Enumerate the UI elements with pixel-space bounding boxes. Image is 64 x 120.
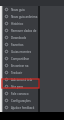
button[interactable]: Traduzir — [3, 69, 38, 76]
button[interactable]: Encontrar na página — [3, 62, 38, 69]
staticText: Histórico — [11, 22, 24, 26]
button[interactable]: Nova guia anônima — [3, 13, 38, 20]
staticText: Encontrar na página — [11, 64, 38, 68]
button[interactable]: Nova guia — [3, 6, 38, 13]
button[interactable]: Ajuda e feedback — [3, 104, 38, 111]
button[interactable]: Site para computador — [3, 83, 38, 90]
staticText: Ajuda e feedback — [11, 106, 35, 110]
staticText: Configurações — [11, 99, 31, 103]
button[interactable]: Fale conosco — [3, 90, 38, 97]
staticText: Downloads — [11, 36, 27, 40]
button[interactable]: Remover dados de nav. — [3, 27, 38, 34]
staticText: Nova guia anônima — [11, 15, 38, 19]
staticText: Guias recentes — [11, 50, 32, 54]
button[interactable]: Downloads — [3, 34, 38, 41]
staticText: Traduzir — [11, 71, 23, 75]
staticText: Remover dados de nav. — [11, 29, 38, 33]
staticText: Compartilhar — [11, 57, 30, 61]
button[interactable]: Guias recentes — [3, 48, 38, 55]
staticText: Adicionar à tela inicial — [11, 78, 38, 82]
button[interactable]: Adicionar à tela inicial — [3, 76, 38, 83]
button[interactable]: Configurações — [3, 97, 38, 104]
button[interactable]: Compartilhar — [3, 55, 38, 62]
button[interactable]: Favoritos — [3, 41, 38, 48]
button[interactable]: Histórico — [3, 20, 38, 27]
staticText: Site para computador — [11, 85, 38, 89]
staticText: Favoritos — [11, 43, 24, 47]
staticText: Fale conosco — [11, 92, 29, 96]
staticText: Nova guia — [11, 8, 25, 12]
